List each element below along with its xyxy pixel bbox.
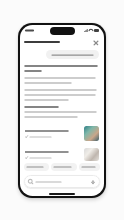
button[interactable] (25, 124, 99, 143)
button[interactable] (79, 163, 100, 171)
button[interactable]: Voice input (90, 179, 96, 185)
button[interactable]: Voice input (24, 175, 100, 188)
button[interactable] (51, 163, 77, 171)
button[interactable] (24, 163, 49, 171)
button[interactable] (46, 50, 99, 59)
button[interactable]: Close (92, 39, 99, 46)
button[interactable] (25, 41, 92, 43)
button[interactable] (25, 146, 99, 163)
